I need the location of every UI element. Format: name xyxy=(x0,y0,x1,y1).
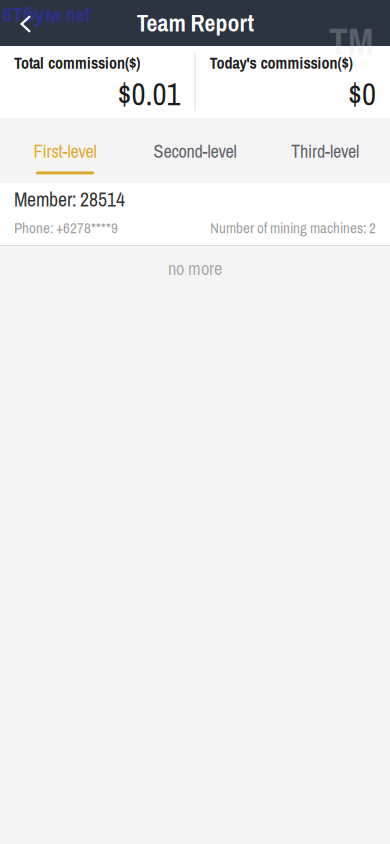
staticText: Phone: +6278****9 xyxy=(14,218,118,238)
staticText: Today's commission($) xyxy=(209,52,352,74)
staticText: 6Тбум net xyxy=(3,1,90,28)
button[interactable]: Second-level xyxy=(130,118,260,183)
button[interactable]: Member: 28514 xyxy=(0,183,390,245)
staticText: no more xyxy=(168,256,222,281)
staticText: First-level xyxy=(33,139,96,163)
staticText: Number of mining machines: 2 xyxy=(210,218,376,238)
staticText: Third-level xyxy=(291,139,359,163)
button[interactable]: Third-level xyxy=(260,118,390,183)
staticText: $0.01 xyxy=(117,74,180,115)
button[interactable]: Back xyxy=(0,0,42,46)
staticText: Team Report xyxy=(136,7,253,39)
staticText: $0 xyxy=(348,74,376,115)
button[interactable]: First-level xyxy=(0,118,130,183)
staticText: Member: 28514 xyxy=(14,186,125,213)
staticText: Second-level xyxy=(153,139,236,163)
staticText: Total commission($) xyxy=(14,52,140,74)
staticText: TM xyxy=(329,16,373,66)
